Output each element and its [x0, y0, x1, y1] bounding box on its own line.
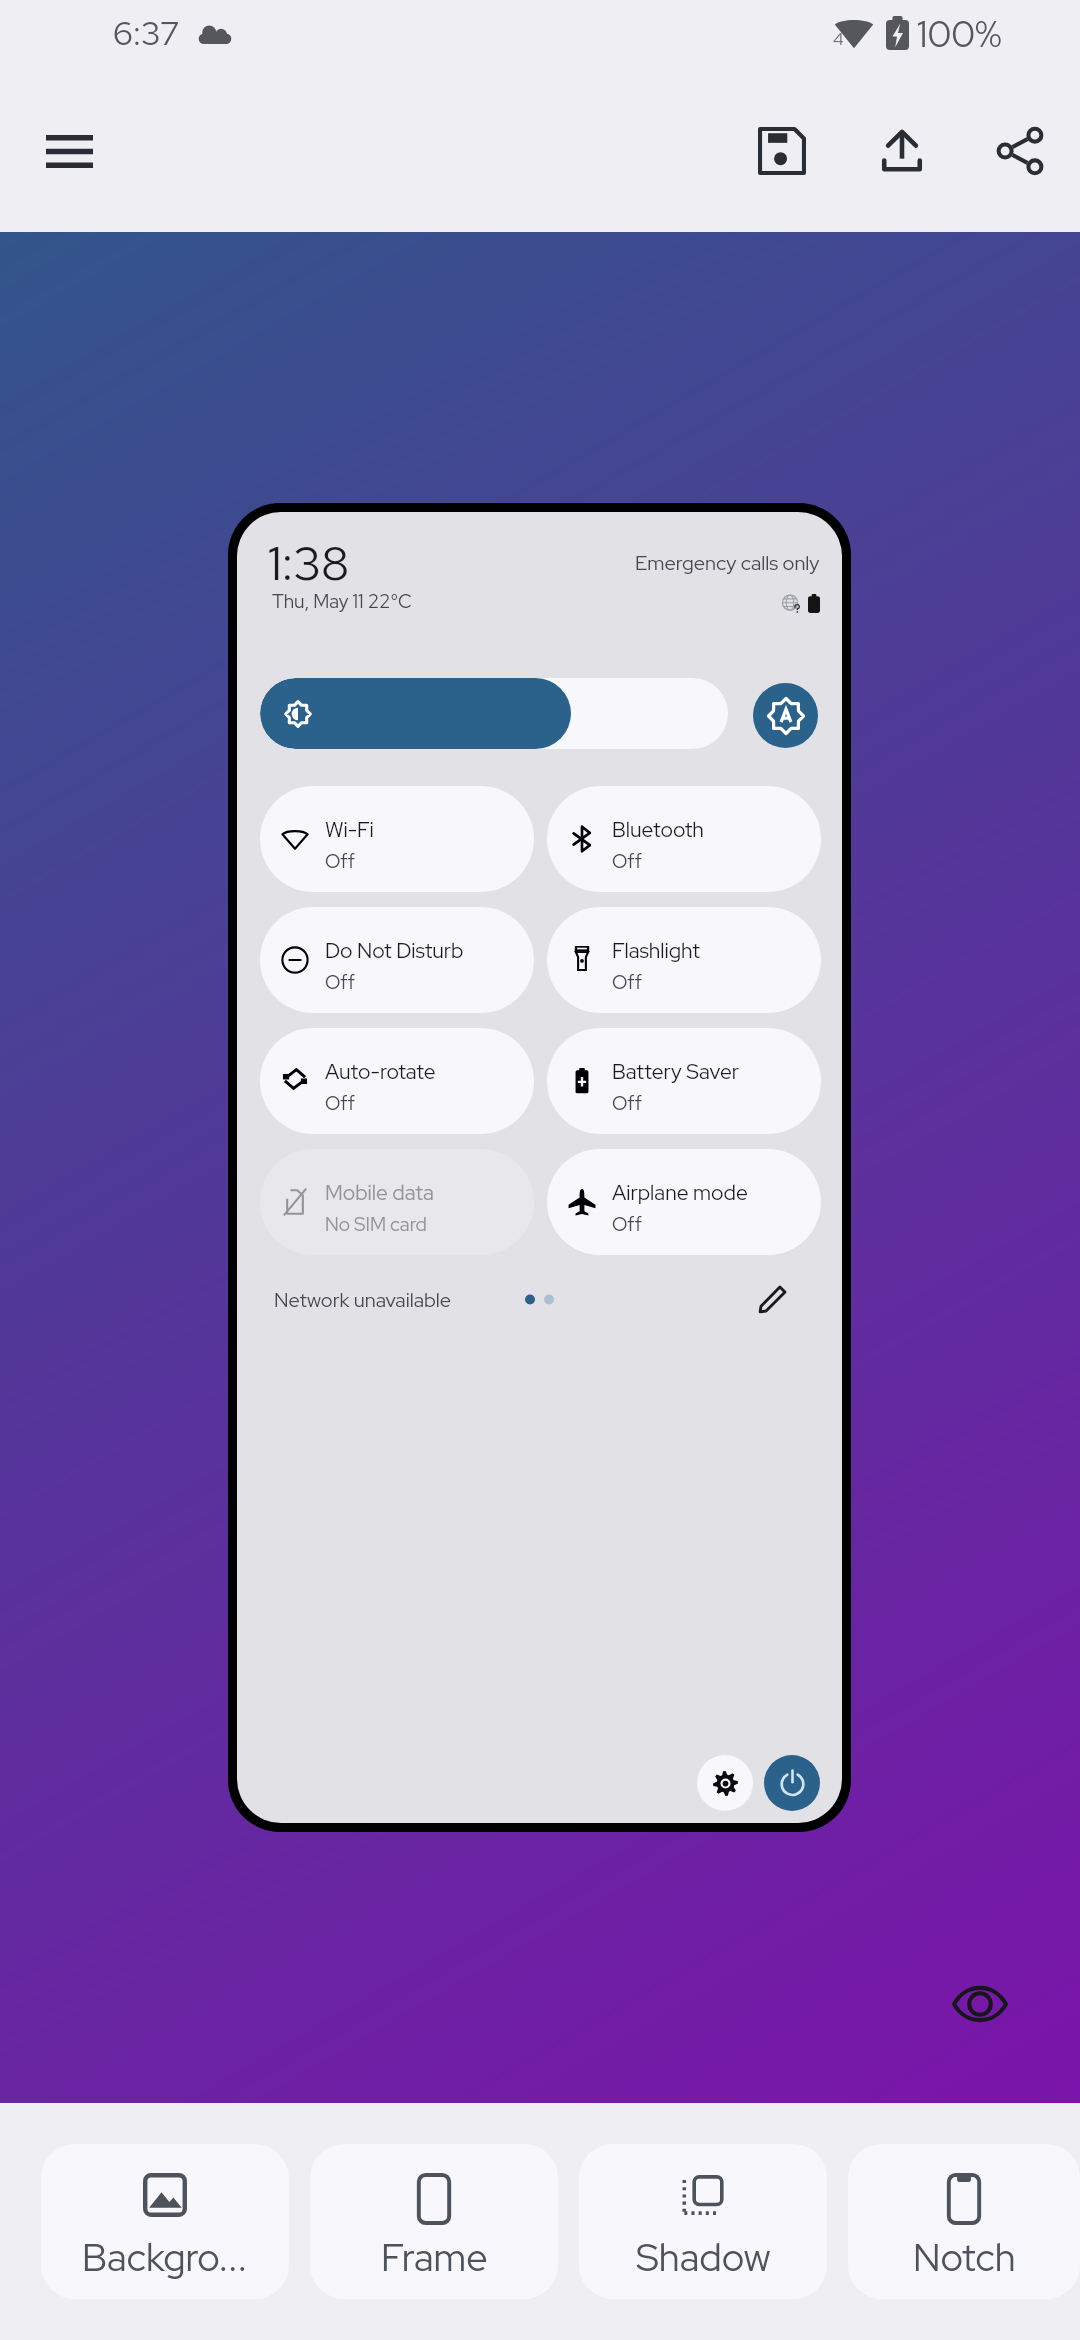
button[interactable]: Bluetooth	[547, 786, 821, 892]
staticText: Wi-Fi	[325, 816, 374, 844]
staticText: Backgro...	[82, 2232, 248, 2282]
button[interactable]: Brightness	[260, 678, 728, 749]
button[interactable]: Frame	[310, 2144, 558, 2299]
staticText: Notch	[913, 2232, 1016, 2282]
button[interactable]: Wi-Fi	[260, 786, 534, 892]
button[interactable]: Airplane mode	[547, 1149, 821, 1255]
button[interactable]: Mobile data	[260, 1149, 534, 1255]
button[interactable]: Flashlight	[547, 907, 821, 1013]
staticText: Airplane mode	[612, 1179, 748, 1207]
button[interactable]: Edit	[751, 1277, 795, 1321]
button[interactable]: Save	[734, 103, 830, 199]
staticText: 4	[833, 28, 844, 50]
staticText: No SIM card	[325, 1212, 427, 1237]
button[interactable]: Preview	[944, 1968, 1016, 2040]
staticText: Off	[612, 1212, 642, 1237]
staticText: Flashlight	[612, 937, 700, 965]
staticText: Off	[612, 970, 642, 995]
staticText: 6:37	[113, 11, 180, 55]
staticText: Do Not Disturb	[325, 937, 464, 965]
button[interactable]: Do Not Disturb	[260, 907, 534, 1013]
staticText: Off	[612, 849, 642, 874]
button[interactable]: Shadow	[579, 2144, 827, 2299]
button[interactable]: Settings	[697, 1755, 753, 1811]
staticText: Frame	[381, 2232, 488, 2282]
staticText: Shadow	[636, 2232, 771, 2282]
button[interactable]: Share	[972, 103, 1068, 199]
staticText: Auto-rotate	[325, 1058, 436, 1086]
staticText: Off	[325, 1091, 355, 1116]
staticText: Emergency calls only	[635, 550, 820, 576]
button[interactable]: Backgro...	[41, 2144, 289, 2299]
staticText: 1:38	[268, 532, 350, 594]
staticText: Thu, May 11 22°C	[272, 589, 412, 614]
staticText: Battery Saver	[612, 1058, 739, 1086]
button[interactable]: Power	[764, 1755, 820, 1811]
staticText: 100%	[917, 10, 1002, 58]
button[interactable]: Battery Saver	[547, 1028, 821, 1134]
button[interactable]: Notch	[848, 2144, 1080, 2299]
button[interactable]: Export	[854, 103, 950, 199]
staticText: Off	[325, 849, 355, 874]
staticText: Off	[325, 970, 355, 995]
staticText: Bluetooth	[612, 816, 704, 844]
button[interactable]: Menu	[21, 103, 117, 199]
button[interactable]: Auto brightness	[753, 683, 818, 748]
button[interactable]: Auto-rotate	[260, 1028, 534, 1134]
staticText: Off	[612, 1091, 642, 1116]
staticText: Mobile data	[325, 1179, 434, 1207]
staticText: Network unavailable	[274, 1287, 452, 1313]
